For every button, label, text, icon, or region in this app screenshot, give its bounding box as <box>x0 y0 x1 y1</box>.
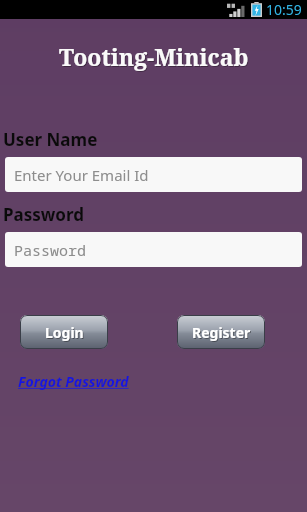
staticText: Password <box>14 240 87 260</box>
other: 3G signal strength <box>227 3 246 17</box>
button[interactable]: Password <box>5 232 302 267</box>
staticText: Login <box>45 323 84 342</box>
staticText: 10:59 <box>266 0 302 19</box>
staticText: Login <box>46 324 85 343</box>
staticText: Tooting-Minicab <box>60 42 250 73</box>
staticText: Forgot Password <box>18 372 129 391</box>
button[interactable]: Enter Your Email Id <box>5 157 302 192</box>
staticText: Password <box>3 203 84 226</box>
other: Battery charging <box>251 2 262 17</box>
staticText: Enter Your Email Id <box>14 165 149 185</box>
button[interactable]: Login <box>20 315 108 349</box>
button[interactable]: Register <box>177 315 265 349</box>
staticText: User Name <box>3 128 98 151</box>
staticText: Register <box>193 324 252 343</box>
staticText: Tooting-Minicab <box>59 41 249 72</box>
staticText: Register <box>192 323 251 342</box>
button[interactable]: Forgot Password <box>16 369 131 394</box>
